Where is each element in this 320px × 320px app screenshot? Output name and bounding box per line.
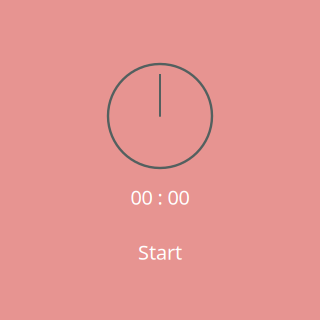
staticText: Start [138,239,182,265]
staticText: 00 : 00 [130,184,189,210]
button[interactable]: Start [120,233,200,271]
